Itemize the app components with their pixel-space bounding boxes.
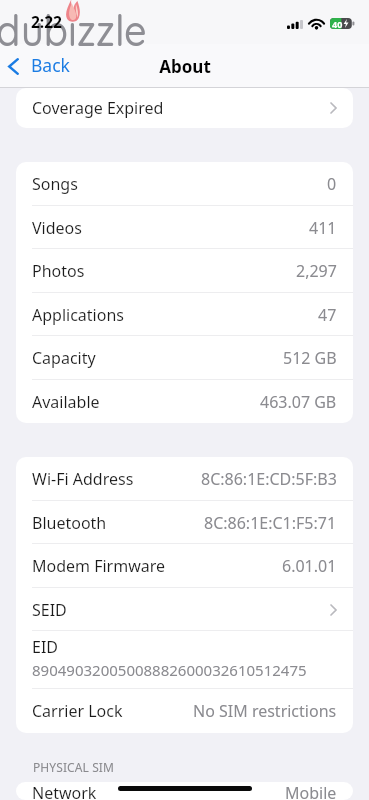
button[interactable]: Capacity [16,336,353,380]
staticText: Carrier Lock [32,700,123,722]
staticText: Wi-Fi Address [32,468,134,490]
staticText: 0 [327,173,337,195]
staticText: 2,297 [296,260,337,282]
staticText: Modem Firmware [32,555,166,577]
staticText: EID [32,636,59,658]
staticText: 47 [318,304,337,326]
button[interactable]: Network [16,782,353,800]
staticText: Network [32,782,97,800]
button[interactable]: Back [0,48,80,84]
staticText: PHYSICAL SIM [33,759,115,775]
staticText: About [159,55,211,78]
staticText: Bluetooth [32,512,107,534]
staticText: Mobile [285,782,337,800]
button[interactable]: Songs [16,162,353,206]
button[interactable]: Wi-Fi Address [16,457,353,501]
button[interactable]: Bluetooth [16,501,353,544]
staticText: Applications [32,304,124,326]
staticText: Capacity [32,347,96,369]
button[interactable]: Available [16,380,353,423]
staticText: Back [31,53,70,77]
button[interactable]: Coverage Expired [16,88,353,128]
button[interactable]: Videos [16,206,353,249]
staticText: 512 GB [283,347,337,369]
staticText: 411 [309,217,337,239]
button[interactable]: Modem Firmware [16,544,353,588]
button[interactable]: EID [16,631,353,689]
staticText: No SIM restrictions [193,700,337,722]
staticText: Videos [32,217,82,239]
button[interactable]: SEID [16,588,353,631]
staticText: 463.07 GB [260,391,337,413]
staticText: 8C:86:1E:C1:F5:71 [204,512,337,534]
button[interactable]: Carrier Lock [16,689,353,733]
staticText: 6.01.01 [282,555,337,577]
staticText: 40 [332,18,343,29]
staticText: 8C:86:1E:CD:5F:B3 [201,468,337,490]
staticText: Coverage Expired [32,97,164,119]
staticText: Available [32,391,100,413]
staticText: SEID [32,599,67,621]
staticText: Photos [32,260,85,282]
staticText: 89049032005008882600032610512475 [32,660,307,680]
button[interactable]: Photos [16,249,353,293]
button[interactable]: Applications [16,293,353,336]
staticText: 2:22 [31,11,62,32]
staticText: Songs [32,173,78,195]
staticText: dubizzle [0,2,147,57]
